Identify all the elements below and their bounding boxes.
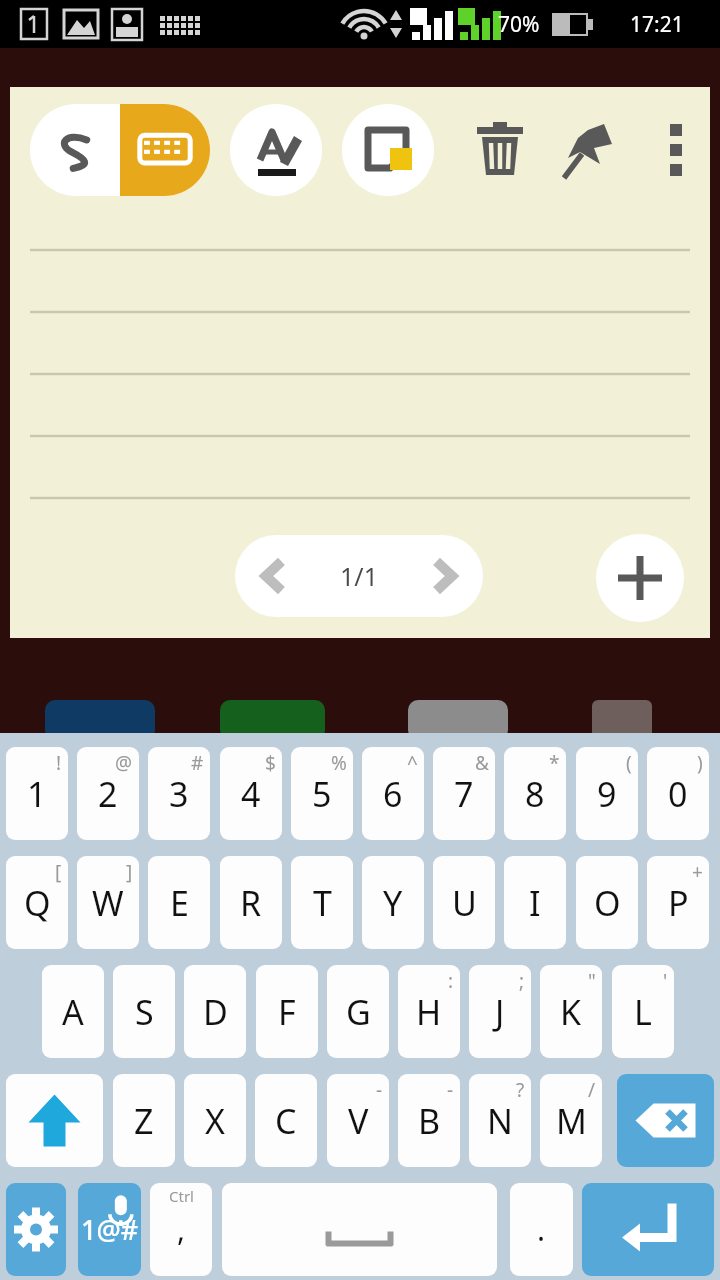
button[interactable]: S — [113, 965, 175, 1058]
button[interactable]: Note background — [342, 104, 434, 196]
staticText: [ — [55, 859, 62, 885]
button[interactable]: L — [612, 965, 674, 1058]
staticText: P — [668, 880, 689, 926]
button[interactable]: 7 — [433, 747, 495, 840]
button[interactable]: Add page — [596, 534, 684, 622]
staticText: D — [203, 989, 228, 1035]
staticText: U — [452, 880, 477, 926]
button[interactable]: D — [184, 965, 246, 1058]
staticText: % — [331, 750, 347, 776]
button[interactable]: Handwriting mode — [30, 104, 120, 196]
staticText: 9 — [597, 771, 617, 817]
staticText: . — [537, 1209, 546, 1250]
button[interactable]: Settings — [6, 1183, 66, 1276]
button[interactable]: E — [148, 856, 210, 949]
button[interactable]: Backspace — [617, 1074, 714, 1167]
staticText: V — [348, 1098, 369, 1144]
button[interactable]: U — [433, 856, 495, 949]
button[interactable]: , — [150, 1183, 212, 1276]
button[interactable]: W — [77, 856, 139, 949]
staticText: Z — [134, 1098, 154, 1144]
button[interactable]: M — [540, 1074, 602, 1167]
staticText: S — [135, 989, 154, 1035]
button[interactable]: 4 — [220, 747, 282, 840]
staticText: / — [588, 1077, 596, 1103]
button[interactable]: More options — [642, 104, 710, 196]
button[interactable]: Enter — [582, 1183, 714, 1276]
button[interactable]: Space — [222, 1183, 497, 1276]
staticText: L — [634, 989, 652, 1035]
staticText: 1@# — [81, 1211, 139, 1248]
staticText: G — [346, 989, 371, 1035]
staticText: F — [278, 989, 296, 1035]
button[interactable]: 5 — [291, 747, 353, 840]
button[interactable]: V — [327, 1074, 389, 1167]
button[interactable]: 1@# — [78, 1183, 141, 1276]
button[interactable]: Pin note — [546, 104, 634, 196]
button[interactable]: 0 — [647, 747, 709, 840]
staticText: # — [191, 750, 204, 776]
staticText: ' — [663, 968, 668, 994]
staticText: " — [588, 968, 596, 994]
staticText: ? — [516, 1077, 525, 1103]
button[interactable]: 8 — [504, 747, 566, 840]
staticText: - — [376, 1077, 383, 1103]
button[interactable]: C — [255, 1074, 317, 1167]
button[interactable]: Pen settings — [230, 104, 322, 196]
staticText: * — [549, 750, 560, 776]
button[interactable]: B — [398, 1074, 460, 1167]
button[interactable]: Z — [113, 1074, 175, 1167]
button[interactable]: J — [469, 965, 531, 1058]
button[interactable]: 2 — [77, 747, 139, 840]
button[interactable]: X — [184, 1074, 246, 1167]
button[interactable]: . — [510, 1183, 573, 1276]
button[interactable]: I — [504, 856, 566, 949]
button[interactable]: A — [42, 965, 104, 1058]
button[interactable]: P — [647, 856, 709, 949]
staticText: X — [205, 1098, 225, 1144]
button[interactable]: T — [291, 856, 353, 949]
staticText: ^ — [407, 750, 418, 776]
staticText: 3 — [169, 771, 189, 817]
button[interactable]: G — [327, 965, 389, 1058]
staticText: $ — [265, 750, 276, 776]
staticText: : — [448, 968, 454, 994]
staticText: C — [275, 1098, 297, 1144]
staticText: @ — [115, 750, 133, 776]
button[interactable]: 6 — [362, 747, 424, 840]
staticText: 4 — [241, 771, 261, 817]
staticText: 7 — [454, 771, 474, 817]
button[interactable]: Keyboard mode — [120, 104, 210, 196]
button[interactable]: F — [256, 965, 318, 1058]
staticText: K — [560, 989, 582, 1035]
button[interactable]: K — [540, 965, 602, 1058]
staticText: A — [62, 989, 84, 1035]
staticText: T — [313, 880, 332, 926]
button[interactable]: O — [576, 856, 638, 949]
staticText: + — [692, 859, 703, 885]
button[interactable]: 1/1 — [235, 535, 483, 617]
staticText: W — [92, 880, 124, 926]
staticText: O — [594, 880, 621, 926]
staticText: ) — [697, 750, 703, 776]
staticText: - — [447, 1077, 454, 1103]
staticText: Y — [383, 880, 403, 926]
staticText: E — [170, 880, 189, 926]
staticText: 2 — [98, 771, 118, 817]
button[interactable]: N — [469, 1074, 531, 1167]
button[interactable]: 9 — [576, 747, 638, 840]
staticText: Ctrl — [169, 1186, 194, 1206]
staticText: ! — [56, 750, 62, 776]
staticText: 1/1 — [311, 559, 407, 593]
button[interactable]: Q — [6, 856, 68, 949]
button[interactable]: R — [220, 856, 282, 949]
button[interactable]: H — [398, 965, 460, 1058]
button[interactable]: Shift — [6, 1074, 103, 1167]
button[interactable]: 3 — [148, 747, 210, 840]
staticText: & — [475, 750, 489, 776]
button[interactable]: Delete — [456, 104, 544, 196]
button[interactable]: Y — [362, 856, 424, 949]
button[interactable]: 1 — [6, 747, 68, 840]
staticText: M — [556, 1098, 587, 1144]
staticText: , — [177, 1209, 186, 1250]
